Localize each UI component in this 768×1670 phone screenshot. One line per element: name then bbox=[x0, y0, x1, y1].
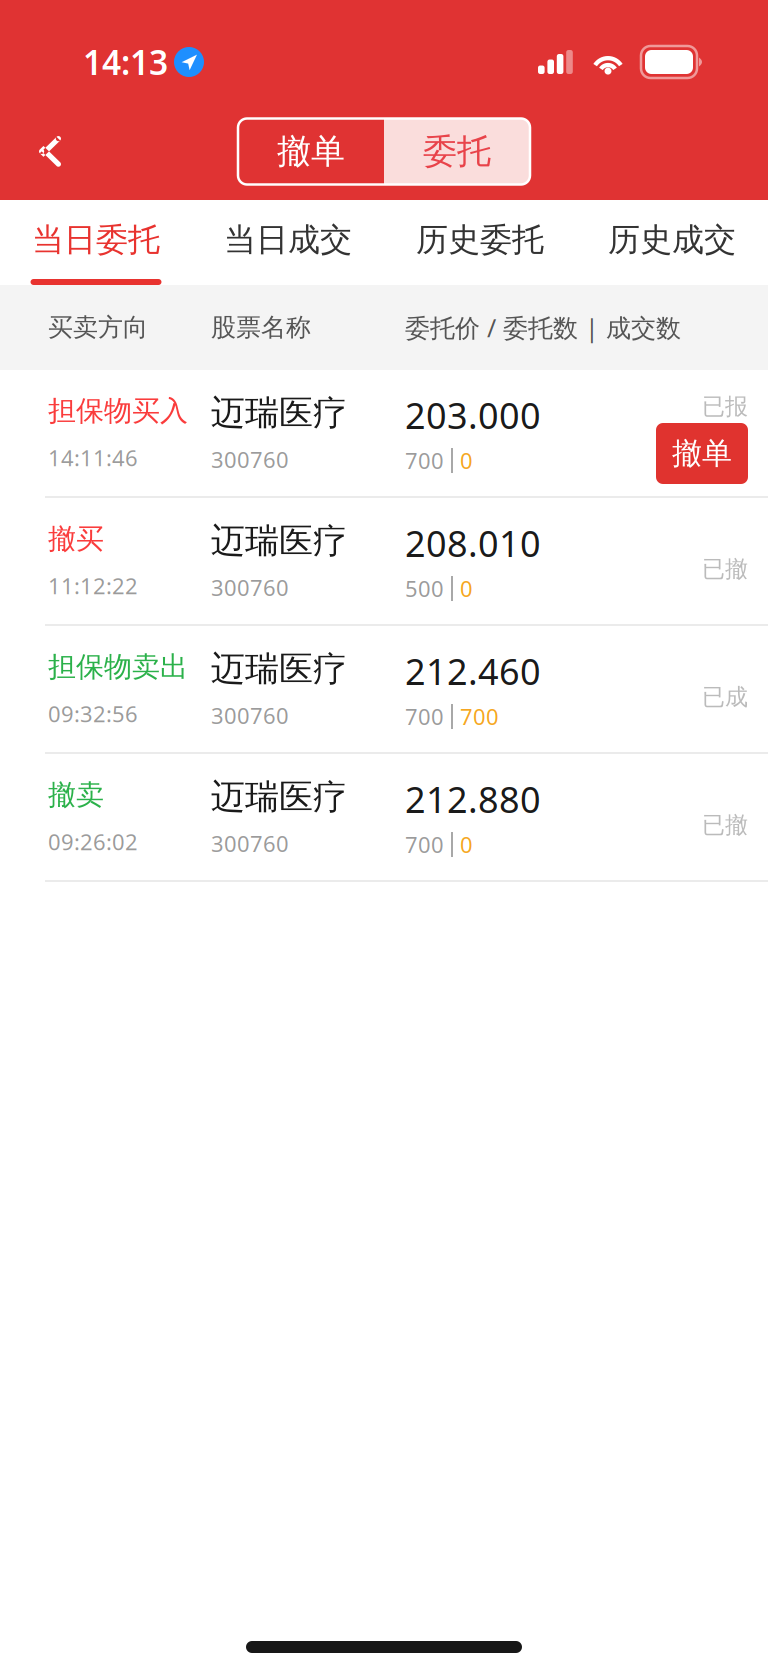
staticText: 300760 bbox=[211, 444, 289, 474]
staticText: 买卖方向 bbox=[48, 312, 148, 343]
staticText: 迈瑞医疗 bbox=[211, 392, 347, 434]
button[interactable]: 当日委托 bbox=[0, 200, 192, 285]
staticText: 700 bbox=[405, 829, 444, 859]
staticText: 已撤 bbox=[702, 810, 748, 839]
staticText: 14:11:46 bbox=[48, 443, 138, 473]
staticText: 500 bbox=[405, 573, 444, 603]
button[interactable]: 撤买 bbox=[0, 498, 768, 624]
button[interactable]: 担保物买入 bbox=[0, 370, 768, 496]
staticText: 迈瑞医疗 bbox=[211, 776, 347, 818]
button[interactable]: 撤卖 bbox=[0, 754, 768, 880]
staticText: 委托 bbox=[423, 130, 491, 173]
button[interactable]: 历史委托 bbox=[384, 200, 576, 285]
button[interactable]: 历史成交 bbox=[576, 200, 768, 285]
staticText: 0 bbox=[460, 445, 473, 475]
staticText: 700 bbox=[405, 445, 444, 475]
button[interactable]: 撤单 bbox=[238, 118, 384, 184]
staticText: 股票名称 bbox=[211, 312, 311, 343]
staticText: 300760 bbox=[211, 572, 289, 602]
staticText: 迈瑞医疗 bbox=[211, 520, 347, 562]
staticText: 撤单 bbox=[277, 130, 345, 173]
staticText: 担保物卖出 bbox=[48, 649, 188, 685]
staticText: 09:32:56 bbox=[48, 699, 138, 729]
staticText: 700 bbox=[405, 701, 444, 731]
staticText: 300760 bbox=[211, 700, 289, 730]
staticText: 09:26:02 bbox=[48, 827, 138, 857]
button[interactable]: 当日成交 bbox=[192, 200, 384, 285]
staticText: 300760 bbox=[211, 828, 289, 858]
staticText: 迈瑞医疗 bbox=[211, 648, 347, 690]
button[interactable]: 担保物卖出 bbox=[0, 626, 768, 752]
staticText: 已撤 bbox=[702, 554, 748, 583]
staticText: 11:12:22 bbox=[48, 571, 138, 601]
staticText: 0 bbox=[460, 829, 473, 859]
staticText: 已报 bbox=[702, 392, 748, 421]
staticText: 撤卖 bbox=[48, 777, 104, 813]
staticText: 撤买 bbox=[48, 521, 104, 557]
staticText: 委托价 / 委托数 | 成交数 bbox=[405, 310, 681, 344]
staticText: 212.880 bbox=[405, 774, 541, 823]
button[interactable]: 委托 bbox=[384, 118, 530, 184]
staticText: 当日委托 bbox=[32, 220, 160, 260]
staticText: 212.460 bbox=[405, 646, 541, 695]
staticText: 208.010 bbox=[405, 518, 541, 567]
staticText: 当日成交 bbox=[224, 220, 352, 260]
staticText: 历史委托 bbox=[416, 220, 544, 260]
staticText: 0 bbox=[460, 573, 473, 603]
staticText: 历史成交 bbox=[608, 220, 736, 260]
staticText: 担保物买入 bbox=[48, 393, 188, 429]
button[interactable]: Back bbox=[30, 120, 100, 182]
staticText: 撤单 bbox=[672, 435, 732, 472]
staticText: 700 bbox=[460, 701, 499, 731]
staticText: 203.000 bbox=[405, 390, 541, 439]
staticText: 已成 bbox=[702, 682, 748, 711]
staticText: 14:13 bbox=[83, 39, 168, 85]
